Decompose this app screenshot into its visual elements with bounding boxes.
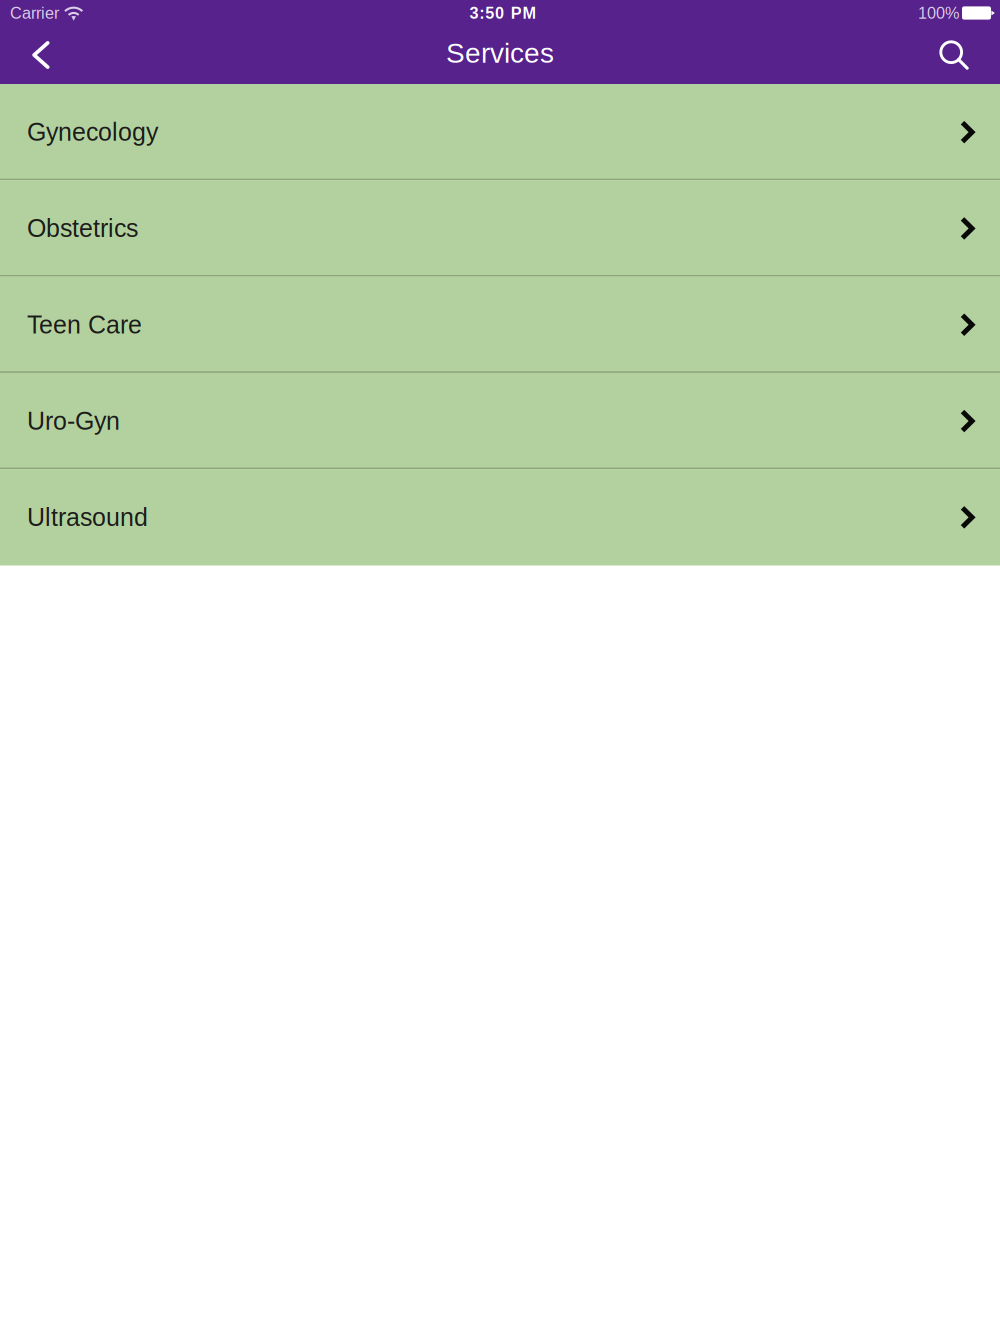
staticText: Teen Care: [27, 311, 142, 339]
button[interactable]: Uro-Gyn: [0, 373, 1000, 469]
staticText: Uro-Gyn: [27, 407, 120, 435]
button[interactable]: Search: [922, 26, 986, 84]
button[interactable]: Gynecology: [0, 84, 1000, 180]
staticText: Ultrasound: [27, 503, 148, 531]
staticText: 3:50 PM: [469, 4, 537, 22]
button[interactable]: Teen Care: [0, 277, 1000, 373]
staticText: 100%: [918, 4, 959, 22]
button[interactable]: Ultrasound: [0, 469, 1000, 565]
staticText: Services: [446, 37, 554, 69]
staticText: Obstetrics: [27, 214, 138, 242]
button[interactable]: Back: [12, 26, 70, 84]
staticText: Carrier: [10, 4, 59, 22]
staticText: Gynecology: [27, 118, 158, 146]
button[interactable]: Obstetrics: [0, 180, 1000, 277]
